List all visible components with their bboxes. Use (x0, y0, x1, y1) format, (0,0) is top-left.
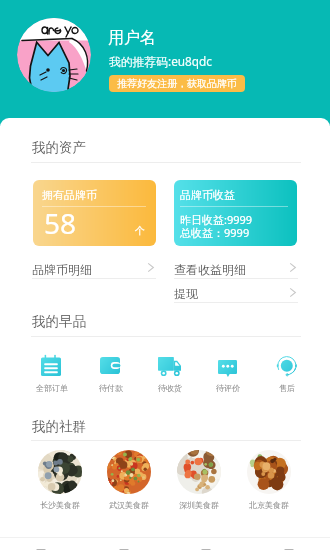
button[interactable]: Category (83, 538, 166, 550)
staticText: 北京美食群 (249, 500, 289, 510)
button[interactable]: Profile photo (17, 18, 91, 92)
button[interactable] (94, 448, 164, 510)
button[interactable] (33, 180, 156, 246)
staticText: 我的早品 (32, 313, 86, 330)
button[interactable] (198, 350, 257, 396)
staticText: 我的推荐码:eu8qdc (109, 53, 213, 69)
staticText: 提现 (174, 286, 198, 301)
staticText: 个 (135, 224, 145, 237)
button[interactable]: Cart (165, 538, 248, 550)
button[interactable] (81, 350, 140, 396)
staticText: 用户名 (108, 28, 156, 48)
staticText: 武汉美食群 (109, 500, 149, 510)
staticText: 查看收益明细 (174, 262, 246, 277)
staticText: 推荐好友注册，获取品牌币 (117, 77, 237, 90)
staticText: 深圳美食群 (179, 500, 219, 510)
button[interactable] (140, 350, 199, 396)
button[interactable] (22, 350, 81, 396)
staticText: 昨日收益:9999 (180, 212, 253, 227)
staticText: 待付款 (99, 383, 123, 393)
staticText: 长沙美食群 (40, 500, 80, 510)
button[interactable]: Me (248, 538, 330, 550)
button[interactable] (174, 278, 297, 302)
button[interactable]: 推荐好友注册，获取品牌币 (109, 75, 245, 92)
button[interactable] (25, 448, 95, 510)
staticText: 总收益：9999 (180, 225, 250, 240)
staticText: 我的社群 (32, 418, 86, 435)
staticText: 品牌币收益 (180, 188, 235, 202)
staticText: 待收货 (158, 383, 182, 393)
staticText: 品牌币明细 (32, 262, 92, 277)
button[interactable] (174, 180, 297, 246)
button[interactable] (257, 350, 316, 396)
staticText: 全部订单 (36, 383, 68, 393)
staticText: 拥有品牌币 (42, 188, 97, 202)
staticText: 待评价 (216, 383, 240, 393)
button[interactable] (33, 254, 156, 278)
staticText: 58 (44, 204, 77, 242)
button[interactable] (174, 254, 297, 278)
button[interactable] (164, 448, 234, 510)
staticText: 我的资产 (32, 139, 86, 156)
button[interactable] (234, 448, 304, 510)
button[interactable]: Home (0, 538, 83, 550)
staticText: 售后 (279, 383, 295, 393)
